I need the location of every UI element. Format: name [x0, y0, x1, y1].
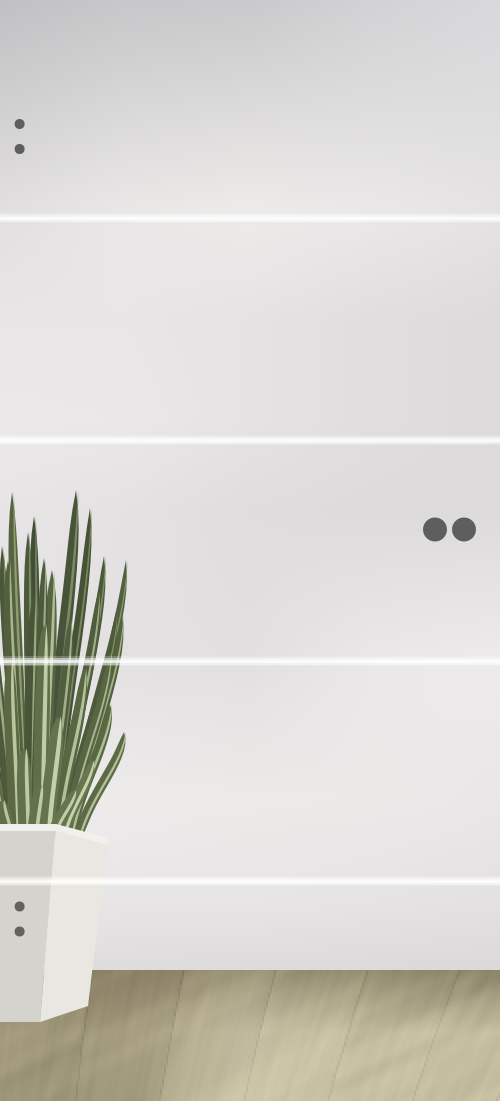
button[interactable]: Pause — [409, 507, 489, 551]
button[interactable]: More — [0, 889, 42, 949]
button[interactable]: More options — [0, 106, 42, 166]
